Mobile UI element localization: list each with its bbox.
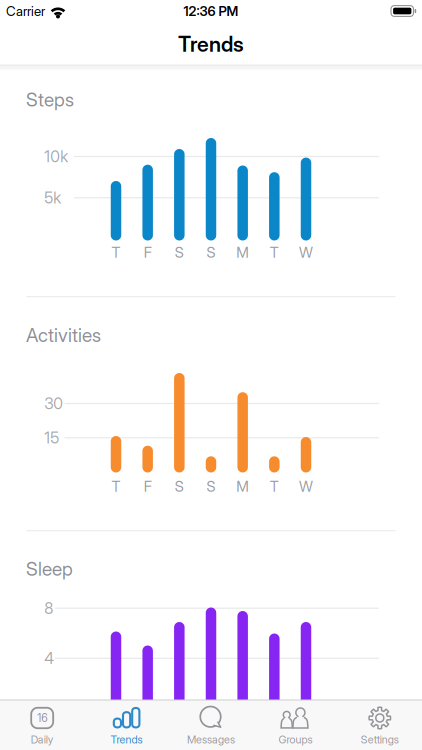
staticText: F: [144, 478, 152, 495]
button[interactable]: Settings: [338, 700, 422, 750]
staticText: Steps: [26, 88, 74, 111]
staticText: Settings: [361, 733, 399, 746]
staticText: Messages: [187, 733, 235, 746]
staticText: Daily: [31, 733, 54, 746]
staticText: 16: [37, 711, 47, 725]
staticText: Trends: [178, 31, 244, 57]
staticText: W: [299, 478, 313, 495]
staticText: T: [270, 244, 279, 261]
staticText: 8: [44, 599, 53, 618]
staticText: 12:36 PM: [183, 3, 238, 19]
button[interactable]: 16: [0, 700, 84, 750]
staticText: S: [206, 478, 215, 495]
staticText: Sleep: [26, 557, 73, 580]
staticText: 10k: [44, 147, 68, 166]
staticText: M: [236, 244, 249, 261]
staticText: T: [111, 244, 120, 261]
staticText: 5k: [44, 188, 61, 207]
staticText: S: [175, 478, 184, 495]
staticText: F: [144, 244, 152, 261]
staticText: S: [175, 244, 184, 261]
staticText: 15: [44, 428, 59, 447]
staticText: Groups: [278, 733, 312, 746]
button[interactable]: Groups: [253, 700, 338, 750]
staticText: Trends: [111, 733, 143, 746]
staticText: S: [206, 244, 215, 261]
staticText: M: [236, 478, 249, 495]
staticText: T: [111, 478, 120, 495]
staticText: 30: [44, 394, 63, 413]
staticText: Carrier: [6, 3, 45, 19]
button[interactable]: Trends: [84, 700, 169, 750]
staticText: W: [299, 244, 313, 261]
button[interactable]: Messages: [169, 700, 253, 750]
staticText: Activities: [26, 323, 101, 346]
staticText: 4: [44, 649, 54, 668]
staticText: T: [270, 478, 279, 495]
